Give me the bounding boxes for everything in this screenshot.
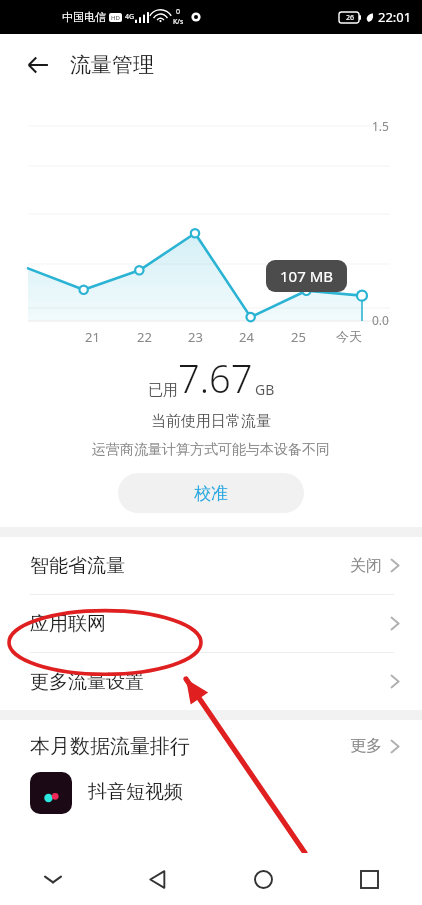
staticText: GB xyxy=(255,380,275,399)
staticText: 关闭 xyxy=(350,556,382,576)
staticText: 流量管理 xyxy=(70,52,154,78)
button[interactable]: 更多流量设置 xyxy=(0,653,422,710)
staticText: 中国电信 xyxy=(62,10,106,24)
staticText: 应用联网 xyxy=(30,612,106,636)
button[interactable]: 本月数据流量排行 xyxy=(0,720,422,772)
button[interactable]: 应用联网 xyxy=(0,595,422,652)
staticText: 7.67 xyxy=(178,352,253,404)
staticText: 本月数据流量排行 xyxy=(30,734,190,759)
button[interactable]: Recent apps xyxy=(316,853,422,905)
staticText: 已用 xyxy=(148,381,178,400)
staticText: 更多流量设置 xyxy=(30,670,144,694)
staticText: 0 xyxy=(176,7,181,17)
button[interactable]: Back xyxy=(105,853,210,905)
staticText: 抖音短视频 xyxy=(88,780,183,804)
staticText: 21 xyxy=(85,328,100,346)
staticText: 1.5 xyxy=(372,118,389,134)
button[interactable]: Back xyxy=(16,43,60,87)
button[interactable]: 抖音短视频 xyxy=(0,772,422,816)
button[interactable]: 校准 xyxy=(118,473,304,513)
staticText: 24 xyxy=(239,328,254,346)
staticText: 0.0 xyxy=(372,312,389,328)
staticText: 22:01 xyxy=(378,8,412,26)
staticText: 4G xyxy=(125,12,135,22)
button[interactable]: Hide navigation bar xyxy=(0,853,105,905)
staticText: 当前使用日常流量 xyxy=(151,412,271,431)
staticText: 运营商流量计算方式可能与本设备不同 xyxy=(92,441,330,459)
staticText: 校准 xyxy=(194,483,228,504)
staticText: 26 xyxy=(346,13,355,23)
staticText: 23 xyxy=(188,328,203,346)
staticText: K/s xyxy=(173,17,184,27)
staticText: 智能省流量 xyxy=(30,554,125,578)
staticText: 25 xyxy=(291,328,306,346)
staticText: 更多 xyxy=(350,736,382,756)
button[interactable]: 智能省流量 xyxy=(0,537,422,594)
button[interactable]: Home xyxy=(210,853,316,905)
staticText: HD xyxy=(111,14,120,22)
staticText: 22 xyxy=(137,328,152,346)
staticText: 今天 xyxy=(336,328,362,344)
staticText: 107 MB xyxy=(280,266,333,286)
